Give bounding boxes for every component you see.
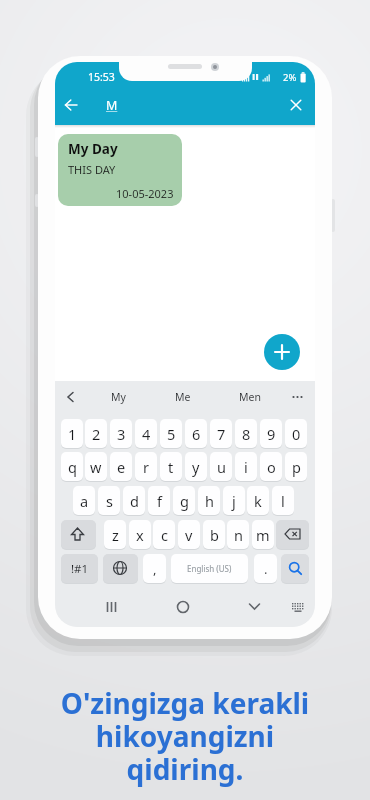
button[interactable]: 9	[260, 419, 282, 448]
staticText: 0	[292, 424, 301, 444]
button[interactable]	[281, 554, 309, 583]
staticText: f	[157, 491, 162, 511]
staticText: !#1	[71, 561, 89, 577]
button[interactable]: 0	[285, 419, 307, 448]
staticText: 9	[267, 424, 276, 444]
button[interactable]	[176, 600, 190, 614]
staticText: English (US)	[187, 563, 232, 574]
button[interactable]	[291, 601, 305, 613]
staticText: 2	[92, 424, 101, 444]
button[interactable]: s	[98, 486, 120, 515]
button[interactable]: g	[173, 486, 195, 515]
button[interactable]: d	[123, 486, 145, 515]
staticText: 10-05-2023	[116, 186, 174, 201]
button[interactable]: 6	[185, 419, 207, 448]
button[interactable]: 7	[210, 419, 232, 448]
staticText: My	[111, 390, 126, 404]
button[interactable]	[105, 600, 118, 614]
button[interactable]: j	[223, 486, 245, 515]
button[interactable]: v	[178, 520, 200, 549]
button[interactable]: u	[210, 452, 232, 481]
button[interactable]	[276, 520, 309, 549]
staticText: g	[180, 491, 189, 511]
staticText: THIS DAY	[68, 162, 116, 177]
button[interactable]: w	[85, 452, 107, 481]
button[interactable]: p	[285, 452, 307, 481]
staticText: u	[217, 457, 226, 477]
staticText: 6	[192, 424, 201, 444]
button[interactable]: ,	[143, 554, 166, 583]
staticText: a	[80, 491, 89, 511]
button[interactable]: a	[73, 486, 95, 515]
staticText: s	[106, 491, 113, 511]
staticText: M	[106, 97, 118, 114]
staticText: r	[143, 457, 149, 477]
button[interactable]: Men	[235, 389, 265, 405]
button[interactable]: .	[254, 554, 277, 583]
staticText: z	[112, 525, 119, 545]
button[interactable]: h	[198, 486, 220, 515]
staticText: v	[185, 525, 193, 545]
staticText: j	[232, 491, 236, 511]
button[interactable]: My Day	[58, 134, 182, 206]
button[interactable]	[264, 334, 300, 370]
button[interactable]: y	[185, 452, 207, 481]
staticText: b	[210, 525, 219, 545]
staticText: 2%	[283, 71, 297, 84]
staticText: 8	[242, 424, 251, 444]
staticText: O'zingizga kerakli hikoyangizni qidiring…	[0, 684, 370, 788]
button[interactable]: My	[103, 389, 133, 405]
button[interactable]: t	[160, 452, 182, 481]
button[interactable]: 5	[160, 419, 182, 448]
button[interactable]: q	[61, 452, 83, 481]
button[interactable]	[61, 520, 96, 549]
staticText: y	[192, 457, 200, 477]
staticText: 5	[167, 424, 176, 444]
button[interactable]: English (US)	[171, 554, 248, 583]
staticText: Men	[239, 390, 261, 404]
staticText: ,	[153, 560, 157, 578]
button[interactable]: 4	[135, 419, 157, 448]
button[interactable]	[248, 602, 261, 612]
button[interactable]	[103, 554, 138, 583]
button[interactable]: 8	[235, 419, 257, 448]
button[interactable]	[65, 391, 76, 403]
button[interactable]: z	[104, 520, 126, 549]
button[interactable]: k	[247, 486, 269, 515]
staticText: x	[136, 525, 144, 545]
button[interactable]: Me	[168, 389, 198, 405]
staticText: i	[244, 457, 248, 477]
button[interactable]: m	[252, 520, 274, 549]
button[interactable]: l	[272, 486, 294, 515]
button[interactable]: i	[235, 452, 257, 481]
button[interactable]: f	[148, 486, 170, 515]
staticText: l	[281, 491, 285, 511]
button[interactable]: n	[227, 520, 249, 549]
staticText: 15:53	[88, 70, 115, 84]
button[interactable]: b	[203, 520, 225, 549]
staticText: q	[68, 457, 77, 477]
button[interactable]: 1	[61, 419, 83, 448]
button[interactable]: M	[103, 96, 121, 114]
staticText: d	[130, 491, 139, 511]
button[interactable]: r	[135, 452, 157, 481]
button[interactable]: 2	[85, 419, 107, 448]
button[interactable]	[290, 99, 302, 111]
button[interactable]: !#1	[61, 554, 98, 583]
button[interactable]: x	[129, 520, 151, 549]
staticText: .	[264, 560, 268, 578]
staticText: o	[267, 457, 276, 477]
button[interactable]	[291, 391, 304, 403]
staticText: 4	[142, 424, 151, 444]
button[interactable]: e	[110, 452, 132, 481]
button[interactable]: o	[260, 452, 282, 481]
staticText: 1	[68, 424, 77, 444]
button[interactable]	[64, 98, 78, 112]
staticText: 3	[117, 424, 126, 444]
staticText: w	[90, 457, 102, 477]
staticText: n	[234, 525, 243, 545]
staticText: 7	[217, 424, 226, 444]
button[interactable]: 3	[110, 419, 132, 448]
button[interactable]: c	[153, 520, 175, 549]
staticText: e	[117, 457, 126, 477]
